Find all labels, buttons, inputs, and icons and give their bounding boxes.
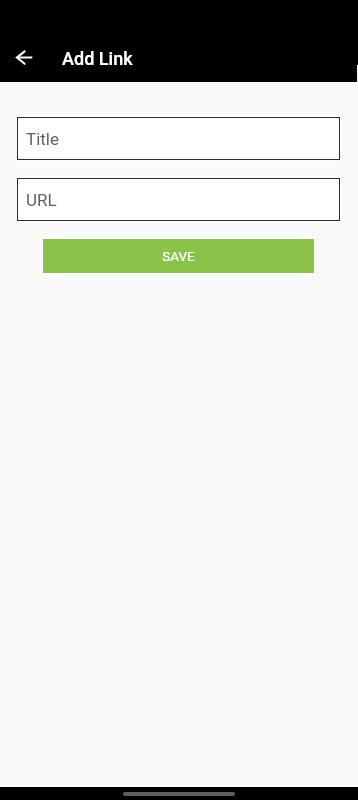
- button[interactable]: Back: [6, 40, 42, 76]
- staticText: Title: [26, 129, 59, 149]
- staticText: SAVE: [162, 248, 195, 264]
- button[interactable]: URL: [17, 176, 341, 222]
- button[interactable]: Title: [17, 115, 341, 161]
- staticText: Add Link: [62, 48, 133, 69]
- button[interactable]: SAVE: [43, 239, 314, 273]
- staticText: URL: [26, 190, 57, 210]
